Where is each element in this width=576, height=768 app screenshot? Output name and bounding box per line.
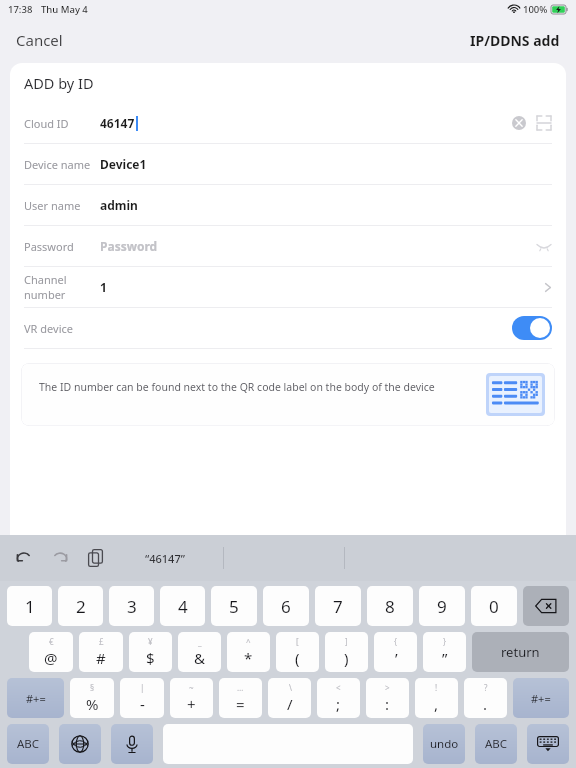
staticText: )	[344, 648, 349, 668]
button[interactable]: #+=	[7, 678, 64, 718]
button[interactable]: Change language	[59, 724, 101, 764]
button[interactable]: 6	[263, 586, 309, 626]
staticText: 4	[178, 595, 188, 618]
button[interactable]: }	[423, 632, 466, 672]
button[interactable]: {	[374, 632, 417, 672]
staticText: ]	[345, 636, 348, 647]
button[interactable]: VR device toggle	[512, 316, 552, 340]
button[interactable]: 1	[7, 586, 52, 626]
staticText: >	[385, 682, 390, 693]
button[interactable]: Backspace	[523, 586, 569, 626]
staticText: 9	[437, 595, 447, 618]
button[interactable]: 2	[58, 586, 103, 626]
staticText: ;	[336, 694, 341, 714]
button[interactable]: Undo	[14, 549, 33, 568]
button[interactable]: undo	[423, 724, 465, 764]
staticText: return	[501, 643, 540, 661]
staticText: $	[146, 648, 155, 668]
staticText: admin	[100, 197, 138, 213]
staticText: +	[187, 694, 196, 714]
staticText: ”	[442, 648, 448, 668]
button[interactable]: ]	[325, 632, 368, 672]
button[interactable]: 0	[471, 586, 517, 626]
button[interactable]: Cancel	[0, 22, 79, 58]
staticText: VR device	[24, 321, 73, 336]
staticText: {	[394, 636, 398, 647]
button[interactable]: 9	[419, 586, 465, 626]
staticText: 6	[281, 595, 291, 618]
button[interactable]: 5	[211, 586, 257, 626]
staticText: ~	[189, 682, 194, 693]
staticText: 1	[25, 595, 35, 618]
staticText: Password	[24, 239, 74, 254]
button[interactable]: 4	[160, 586, 205, 626]
staticText: ¥	[148, 636, 153, 647]
button[interactable]: 7	[315, 586, 361, 626]
staticText: \	[289, 682, 292, 693]
staticText: ABC	[485, 736, 508, 752]
staticText: Cancel	[16, 30, 63, 50]
button[interactable]: §	[70, 678, 114, 718]
staticText: :	[385, 694, 390, 714]
staticText: ABC	[17, 736, 40, 752]
button[interactable]: \	[268, 678, 311, 718]
button[interactable]: ~	[170, 678, 213, 718]
staticText: !	[435, 682, 438, 693]
staticText: #	[96, 648, 106, 668]
button[interactable]: ABC	[475, 724, 517, 764]
button[interactable]: #+=	[513, 678, 569, 718]
button[interactable]: £	[79, 632, 123, 672]
staticText: ADD by ID	[24, 73, 94, 93]
staticText: …	[237, 682, 244, 693]
button[interactable]: Clear	[512, 116, 526, 130]
button[interactable]: Hide keyboard	[527, 724, 569, 764]
staticText: Channel	[24, 272, 67, 287]
staticText: 100%	[523, 3, 548, 16]
staticText: ’	[395, 648, 398, 668]
staticText: 3	[127, 595, 137, 618]
staticText: IP/DDNS add	[470, 31, 560, 50]
button[interactable]: Channel	[10, 267, 566, 307]
button[interactable]: 3	[109, 586, 154, 626]
button[interactable]: |	[120, 678, 164, 718]
staticText: 8	[385, 595, 395, 618]
staticText: &	[194, 648, 205, 668]
button[interactable]: ¥	[129, 632, 172, 672]
button[interactable]: Scan QR code	[536, 115, 552, 131]
staticText: (	[295, 648, 300, 668]
button[interactable]: ABC	[7, 724, 49, 764]
button[interactable]: _	[178, 632, 221, 672]
staticText: 2	[76, 595, 86, 618]
staticText: #+=	[26, 691, 46, 706]
staticText: _	[198, 636, 202, 647]
button[interactable]: Dictation	[111, 724, 153, 764]
staticText: Thu May 4	[41, 3, 88, 16]
staticText: /	[287, 694, 293, 714]
button[interactable]: return	[472, 632, 569, 672]
staticText: }	[443, 636, 447, 647]
button[interactable]: !	[415, 678, 458, 718]
button[interactable]: ?	[464, 678, 507, 718]
staticText: ,	[434, 694, 439, 714]
staticText: ?	[484, 682, 488, 693]
button[interactable]: ^	[227, 632, 270, 672]
button[interactable]: Redo	[51, 549, 70, 568]
button[interactable]: IP/DDNS add	[454, 23, 576, 58]
staticText: Cloud ID	[24, 116, 69, 131]
button[interactable]: Show password	[536, 241, 552, 251]
staticText: number	[24, 287, 66, 302]
button[interactable]: [	[276, 632, 319, 672]
button[interactable]: €	[29, 632, 73, 672]
staticText: <	[336, 682, 341, 693]
staticText: @	[44, 648, 58, 668]
staticText: £	[99, 636, 104, 647]
button[interactable]: <	[317, 678, 360, 718]
button[interactable]: …	[219, 678, 262, 718]
button[interactable]: Paste	[88, 549, 103, 567]
staticText: =	[236, 694, 245, 714]
button[interactable]: >	[366, 678, 409, 718]
staticText: §	[90, 682, 95, 693]
staticText: 17:38	[8, 3, 33, 16]
button[interactable]: 8	[367, 586, 413, 626]
